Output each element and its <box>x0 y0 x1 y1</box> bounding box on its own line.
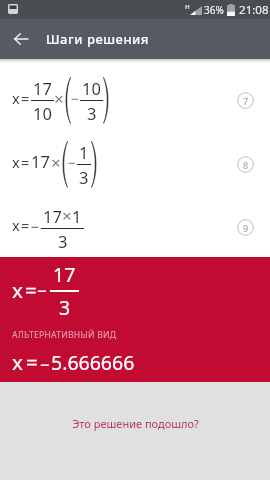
staticText: x <box>12 276 23 304</box>
staticText: x <box>12 152 20 172</box>
staticText: 3 <box>58 230 68 252</box>
staticText: 3 <box>87 102 97 124</box>
button[interactable]: x <box>0 131 270 194</box>
button[interactable]: x <box>0 194 270 257</box>
staticText: 7 <box>243 95 249 107</box>
staticText: 5.666666 <box>51 349 135 376</box>
staticText: − <box>37 279 47 302</box>
staticText: = <box>25 276 37 304</box>
staticText: 1 <box>79 141 89 163</box>
staticText: − <box>31 217 40 236</box>
staticText: 17 <box>43 205 62 227</box>
button[interactable]: Back <box>3 19 39 59</box>
staticText: − <box>71 89 80 108</box>
staticText: H <box>185 3 190 11</box>
staticText: 21:08 <box>239 2 269 18</box>
staticText: − <box>68 153 77 172</box>
staticText: 1 <box>72 205 82 227</box>
staticText: 17 <box>31 150 50 172</box>
staticText: 10 <box>82 77 101 99</box>
staticText: 10 <box>33 102 52 124</box>
staticText: x <box>12 215 20 235</box>
staticText: − <box>40 353 50 376</box>
staticText: x <box>12 348 23 376</box>
staticText: × <box>62 204 72 227</box>
staticText: = <box>21 215 30 235</box>
staticText: Это решение подошло? <box>72 416 199 431</box>
staticText: 9 <box>243 222 249 234</box>
staticText: × <box>54 87 64 110</box>
staticText: 17 <box>33 77 52 99</box>
staticText: 3 <box>59 294 71 321</box>
staticText: Шаги решения <box>46 30 149 48</box>
staticText: 8 <box>243 159 249 171</box>
staticText: = <box>26 348 38 376</box>
staticText: = <box>21 152 30 172</box>
staticText: 36% <box>204 3 224 17</box>
staticText: АЛЬТЕРНАТИВНЫЙ ВИД <box>12 329 117 341</box>
staticText: 17 <box>53 261 76 288</box>
staticText: × <box>51 151 61 174</box>
staticText: = <box>21 88 30 108</box>
button[interactable]: Это решение подошло? <box>58 409 213 438</box>
staticText: 3 <box>79 166 89 188</box>
button[interactable]: x <box>0 68 270 131</box>
staticText: x <box>12 88 20 108</box>
